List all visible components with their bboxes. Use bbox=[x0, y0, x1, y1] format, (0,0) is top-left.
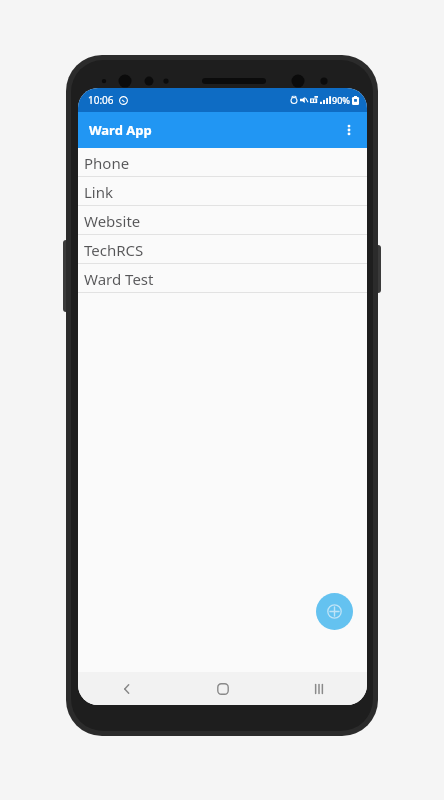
button[interactable]: Ward Test bbox=[78, 264, 367, 293]
button[interactable]: Back bbox=[78, 672, 175, 705]
button[interactable]: Home bbox=[175, 672, 271, 705]
staticText: 90% bbox=[332, 94, 350, 106]
staticText: TechRCS bbox=[84, 240, 144, 260]
button[interactable]: TechRCS bbox=[78, 235, 367, 264]
button[interactable]: Add bbox=[316, 593, 353, 630]
button[interactable]: Recent apps bbox=[271, 672, 367, 705]
staticText: Website bbox=[84, 211, 141, 231]
button[interactable]: Phone bbox=[78, 148, 367, 177]
button[interactable]: Link bbox=[78, 177, 367, 206]
staticText: Link bbox=[84, 182, 114, 202]
staticText: Ward App bbox=[89, 121, 152, 139]
button[interactable]: Website bbox=[78, 206, 367, 235]
staticText: Ward Test bbox=[84, 269, 154, 289]
staticText: 10:06 bbox=[88, 93, 114, 107]
button[interactable]: More options bbox=[331, 112, 367, 148]
staticText: Phone bbox=[84, 153, 130, 173]
